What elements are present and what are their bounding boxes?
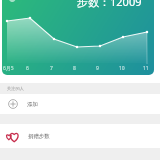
staticText: 捐赠步数	[28, 133, 50, 140]
button[interactable]: Donate steps	[0, 124, 160, 148]
staticText: 关注的人	[7, 86, 24, 91]
staticText: 7	[50, 65, 53, 72]
staticText: 6	[26, 65, 29, 72]
staticText: 11	[143, 65, 149, 72]
other: Donate steps	[6, 131, 19, 142]
staticText: 添加	[27, 101, 38, 108]
staticText: 9	[96, 65, 99, 72]
button[interactable]: Add	[0, 94, 160, 114]
button[interactable]: Back	[6, 0, 18, 5]
other: Add	[8, 99, 18, 109]
staticText: 步数：12009	[77, 0, 142, 9]
staticText: 6月5	[3, 65, 14, 72]
staticText: 10	[119, 65, 125, 72]
staticText: 8	[73, 65, 76, 72]
